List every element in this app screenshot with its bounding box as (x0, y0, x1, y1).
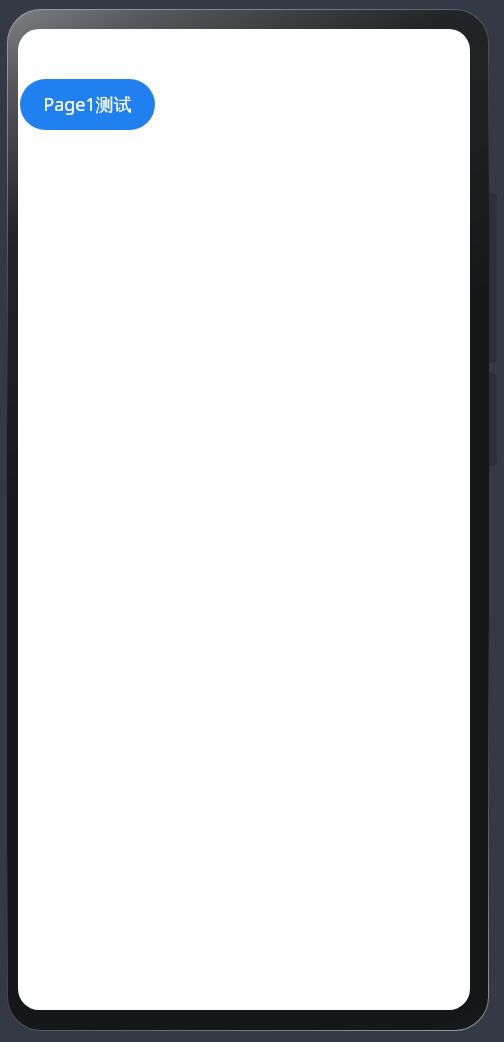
button[interactable]: Volume button (484, 193, 497, 363)
button[interactable]: Page1测试 (20, 79, 155, 130)
button[interactable]: Power button (484, 373, 497, 466)
staticText: Page1测试 (43, 92, 132, 117)
